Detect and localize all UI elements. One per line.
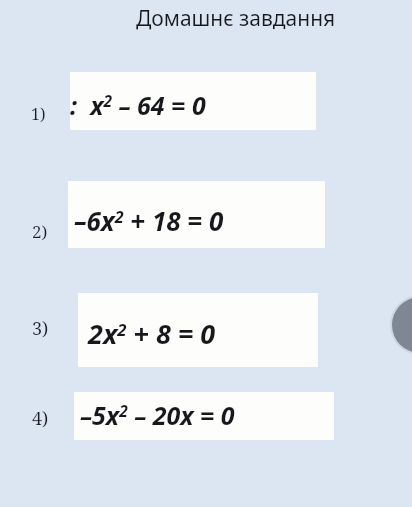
staticText: 2) [32,220,48,243]
staticText: 1) [31,103,46,125]
button[interactable]: 4) [32,406,49,431]
button[interactable]: 2) [32,220,48,243]
staticText: 3) [32,316,49,341]
staticText: Домашнє завдання [136,4,336,33]
staticText: –6x2 + 18 = 0 [74,203,224,238]
staticText: 2x2 + 8 = 0 [88,315,216,352]
button[interactable]: Scroll to top [392,297,412,353]
staticText: –5x2 – 20x = 0 [80,398,235,432]
button[interactable] [78,293,318,367]
button[interactable] [74,392,334,440]
button[interactable] [70,72,316,130]
staticText: 4) [32,406,49,431]
staticText: : x2 – 64 = 0 [70,88,206,122]
button[interactable] [68,181,325,248]
button[interactable]: 3) [32,316,49,341]
button[interactable]: Домашнє завдання [136,4,336,33]
button[interactable]: 1) [31,103,46,125]
